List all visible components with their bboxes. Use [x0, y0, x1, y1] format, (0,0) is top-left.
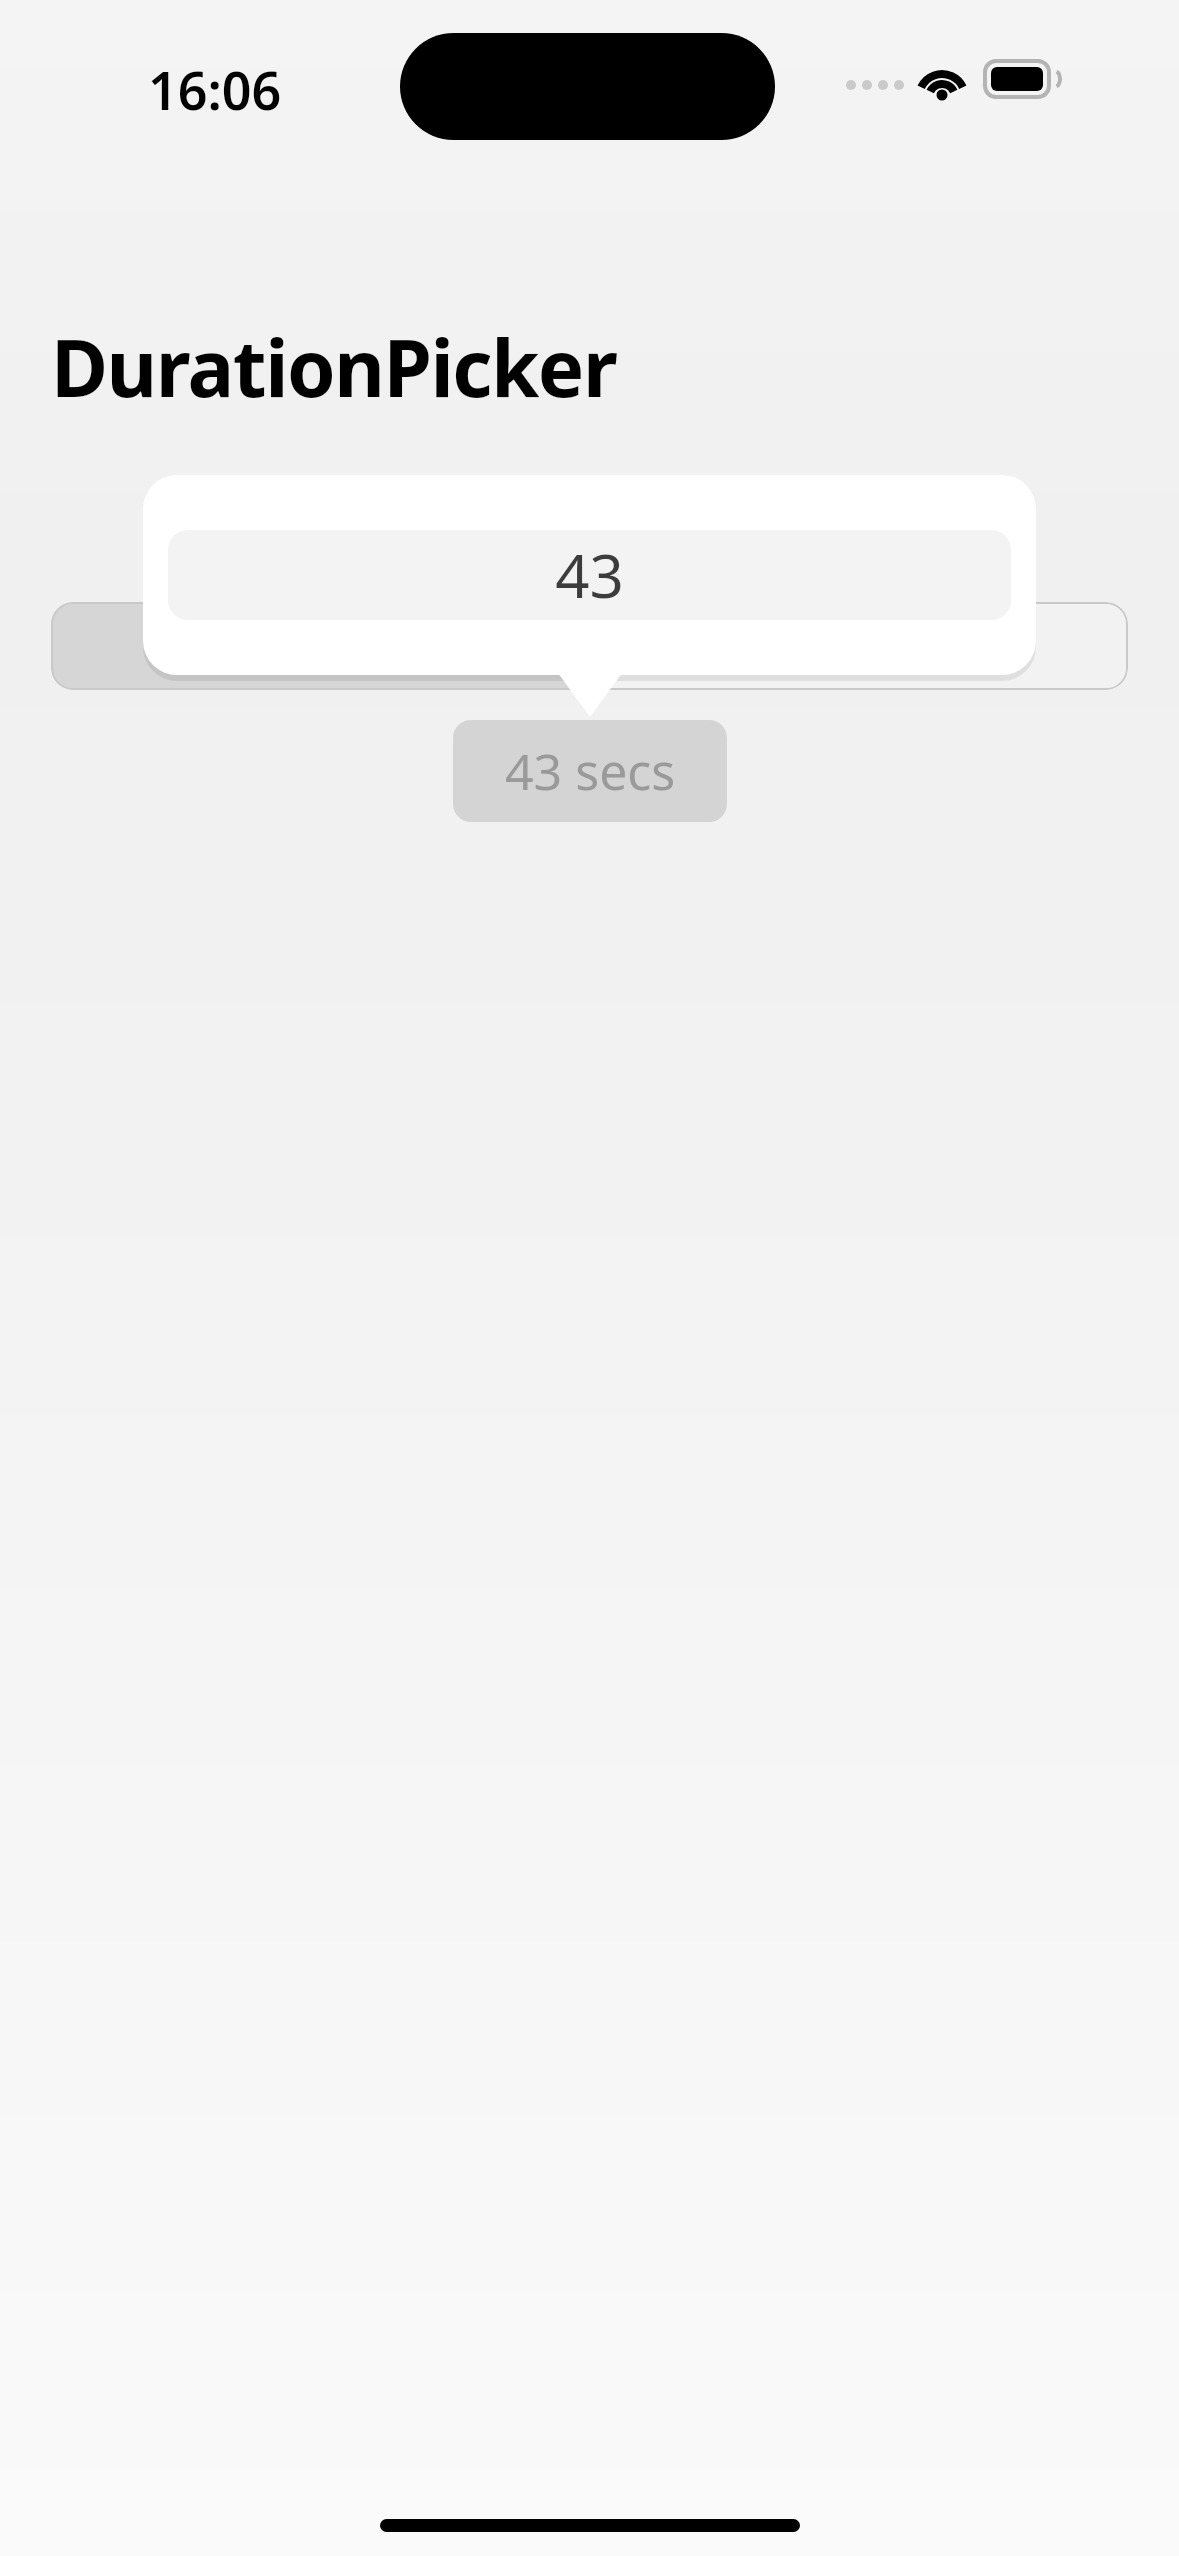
button[interactable]: 43 secs	[453, 720, 727, 822]
staticText: DurationPicker	[51, 314, 617, 420]
staticText: 43	[555, 534, 624, 616]
button[interactable]: 43	[168, 530, 1011, 620]
button[interactable]	[51, 602, 1128, 690]
staticText: 16:06	[148, 54, 282, 125]
staticText: 43 secs	[505, 737, 676, 805]
